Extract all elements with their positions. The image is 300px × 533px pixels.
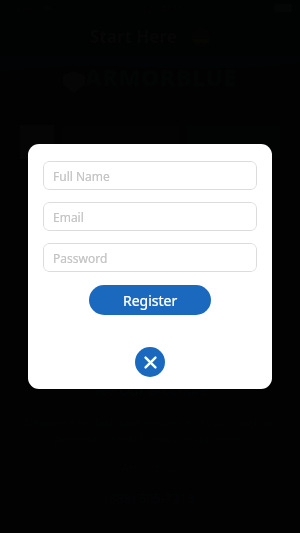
staticText: See Our Brochure — [92, 380, 209, 399]
button[interactable]: Full Name — [43, 161, 257, 190]
staticText: Order — [129, 342, 171, 362]
button[interactable]: Password — [43, 243, 257, 272]
button[interactable]: Register — [89, 285, 211, 315]
staticText: Register — [123, 291, 178, 310]
staticText: Email — [53, 209, 84, 225]
button[interactable]: See Our Brochure — [92, 380, 209, 399]
staticText: Password — [53, 250, 108, 266]
button[interactable] — [20, 125, 54, 159]
button[interactable]: Email — [43, 202, 257, 231]
button[interactable] — [62, 126, 179, 158]
button[interactable] — [187, 126, 280, 158]
button[interactable]: Close — [135, 347, 165, 377]
staticText: Full Name — [53, 168, 110, 184]
